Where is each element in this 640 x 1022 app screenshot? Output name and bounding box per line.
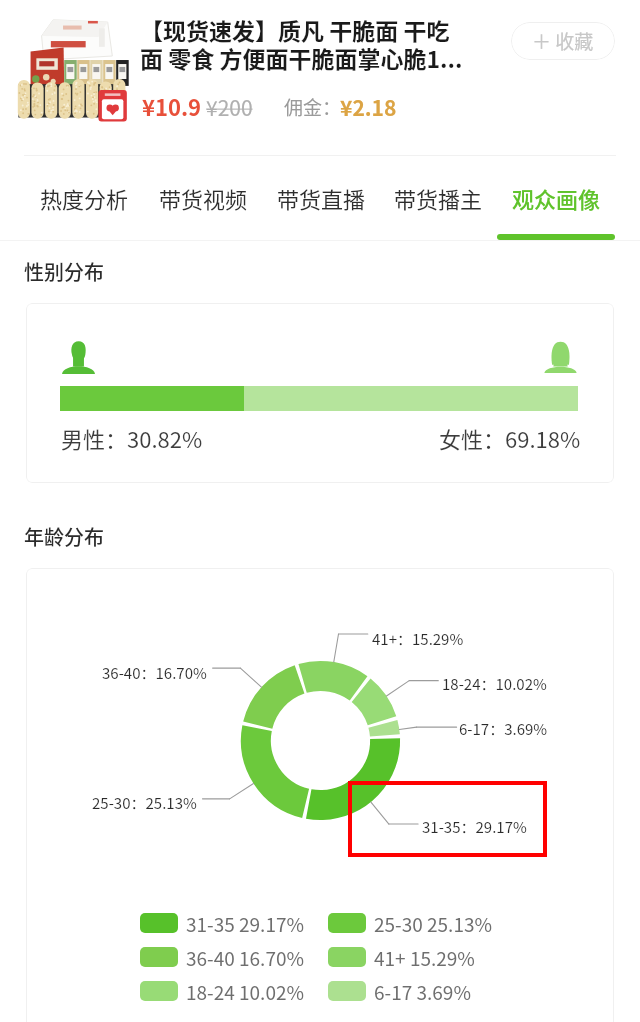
staticText: 【现货速发】质凡 干脆面 干吃面 零食 方便面干脆面掌心脆1... (140, 13, 468, 75)
staticText: ¥2.18 (340, 92, 397, 122)
staticText: 31-35：29.17% (422, 816, 527, 838)
staticText: 25-30 25.13% (374, 910, 492, 936)
staticText: 性别分布 (24, 257, 104, 286)
staticText: 女性：69.18% (439, 422, 581, 454)
button[interactable]: 带货视频 (144, 175, 262, 240)
button[interactable]: 31-35 29.17% (140, 910, 304, 936)
staticText: 36-40：16.70% (102, 662, 207, 684)
staticText: 18-24：10.02% (442, 673, 547, 695)
staticText: 41+ 15.29% (374, 944, 475, 970)
button[interactable]: 观众画像 (497, 175, 615, 240)
button[interactable]: 41+ 15.29% (328, 944, 475, 970)
staticText: 18-24 10.02% (186, 978, 304, 1004)
staticText: 6-17：3.69% (459, 718, 548, 740)
other: Female (544, 341, 577, 373)
button[interactable]: 带货播主 (379, 175, 497, 240)
button[interactable]: 6-17 3.69% (328, 978, 471, 1004)
other: Male (62, 340, 95, 374)
staticText: ＋ 收藏 (532, 27, 594, 55)
button[interactable]: ＋ 收藏 (511, 22, 615, 60)
staticText: 带货视频 (159, 182, 248, 214)
staticText: 25-30：25.13% (92, 792, 197, 814)
button[interactable]: 热度分析 (25, 175, 143, 240)
staticText: 31-35 29.17% (186, 910, 304, 936)
staticText: 热度分析 (40, 182, 129, 214)
staticText: 男性：30.82% (61, 422, 203, 454)
staticText: 年龄分布 (24, 522, 104, 551)
staticText: ¥10.9 (142, 90, 202, 122)
staticText: 带货直播 (277, 182, 366, 214)
staticText: 36-40 16.70% (186, 944, 304, 970)
button[interactable]: 36-40 16.70% (140, 944, 304, 970)
staticText: 6-17 3.69% (374, 978, 471, 1004)
button[interactable]: 18-24 10.02% (140, 978, 304, 1004)
staticText: 带货播主 (394, 182, 483, 214)
button[interactable]: 25-30 25.13% (328, 910, 492, 936)
staticText: ¥200 (206, 92, 253, 122)
staticText: 观众画像 (512, 182, 601, 214)
button[interactable]: 带货直播 (262, 175, 380, 240)
staticText: 佣金： (284, 93, 342, 121)
button[interactable]: 【现货速发】质凡 干脆面 干吃面 零食 方便面干脆面掌心脆1... (0, 0, 640, 150)
staticText: 41+：15.29% (372, 628, 464, 650)
